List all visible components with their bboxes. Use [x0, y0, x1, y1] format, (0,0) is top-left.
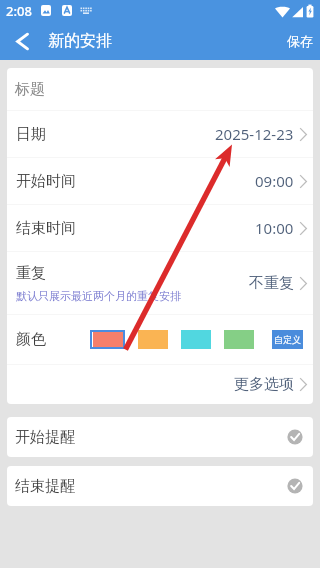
- staticText: 默认只展示最近两个月的重复安排: [16, 289, 181, 303]
- staticText: 结束提醒: [15, 477, 75, 496]
- staticText: 更多选项: [234, 375, 294, 394]
- staticText: 2:08: [6, 2, 32, 20]
- button[interactable]: 保存: [276, 25, 320, 57]
- button[interactable]: 自定义: [272, 330, 303, 349]
- staticText: 2025-12-23: [215, 124, 294, 144]
- staticText: 新的安排: [48, 31, 112, 51]
- button[interactable]: 结束时间: [7, 205, 313, 251]
- button[interactable]: 开始时间: [7, 158, 313, 204]
- staticText: 颜色: [16, 330, 46, 349]
- button[interactable]: 开始提醒: [7, 417, 313, 457]
- staticText: 10:00: [255, 218, 294, 238]
- staticText: 保存: [287, 33, 313, 49]
- staticText: 开始提醒: [15, 428, 75, 447]
- button[interactable]: 重复: [7, 252, 313, 314]
- staticText: 自定义: [274, 334, 301, 345]
- staticText: 重复: [16, 264, 46, 283]
- staticText: 结束时间: [16, 219, 76, 238]
- staticText: 标题: [15, 80, 45, 99]
- staticText: 不重复: [249, 274, 294, 293]
- staticText: 09:00: [255, 171, 294, 191]
- button[interactable]: Colour: [90, 330, 125, 349]
- button[interactable]: Back: [0, 22, 44, 60]
- button[interactable]: 日期: [7, 111, 313, 157]
- button[interactable]: 更多选项: [7, 365, 313, 404]
- staticText: 日期: [16, 125, 46, 144]
- staticText: 开始时间: [16, 172, 76, 191]
- button[interactable]: 结束提醒: [7, 466, 313, 506]
- button[interactable]: 标题: [7, 68, 313, 110]
